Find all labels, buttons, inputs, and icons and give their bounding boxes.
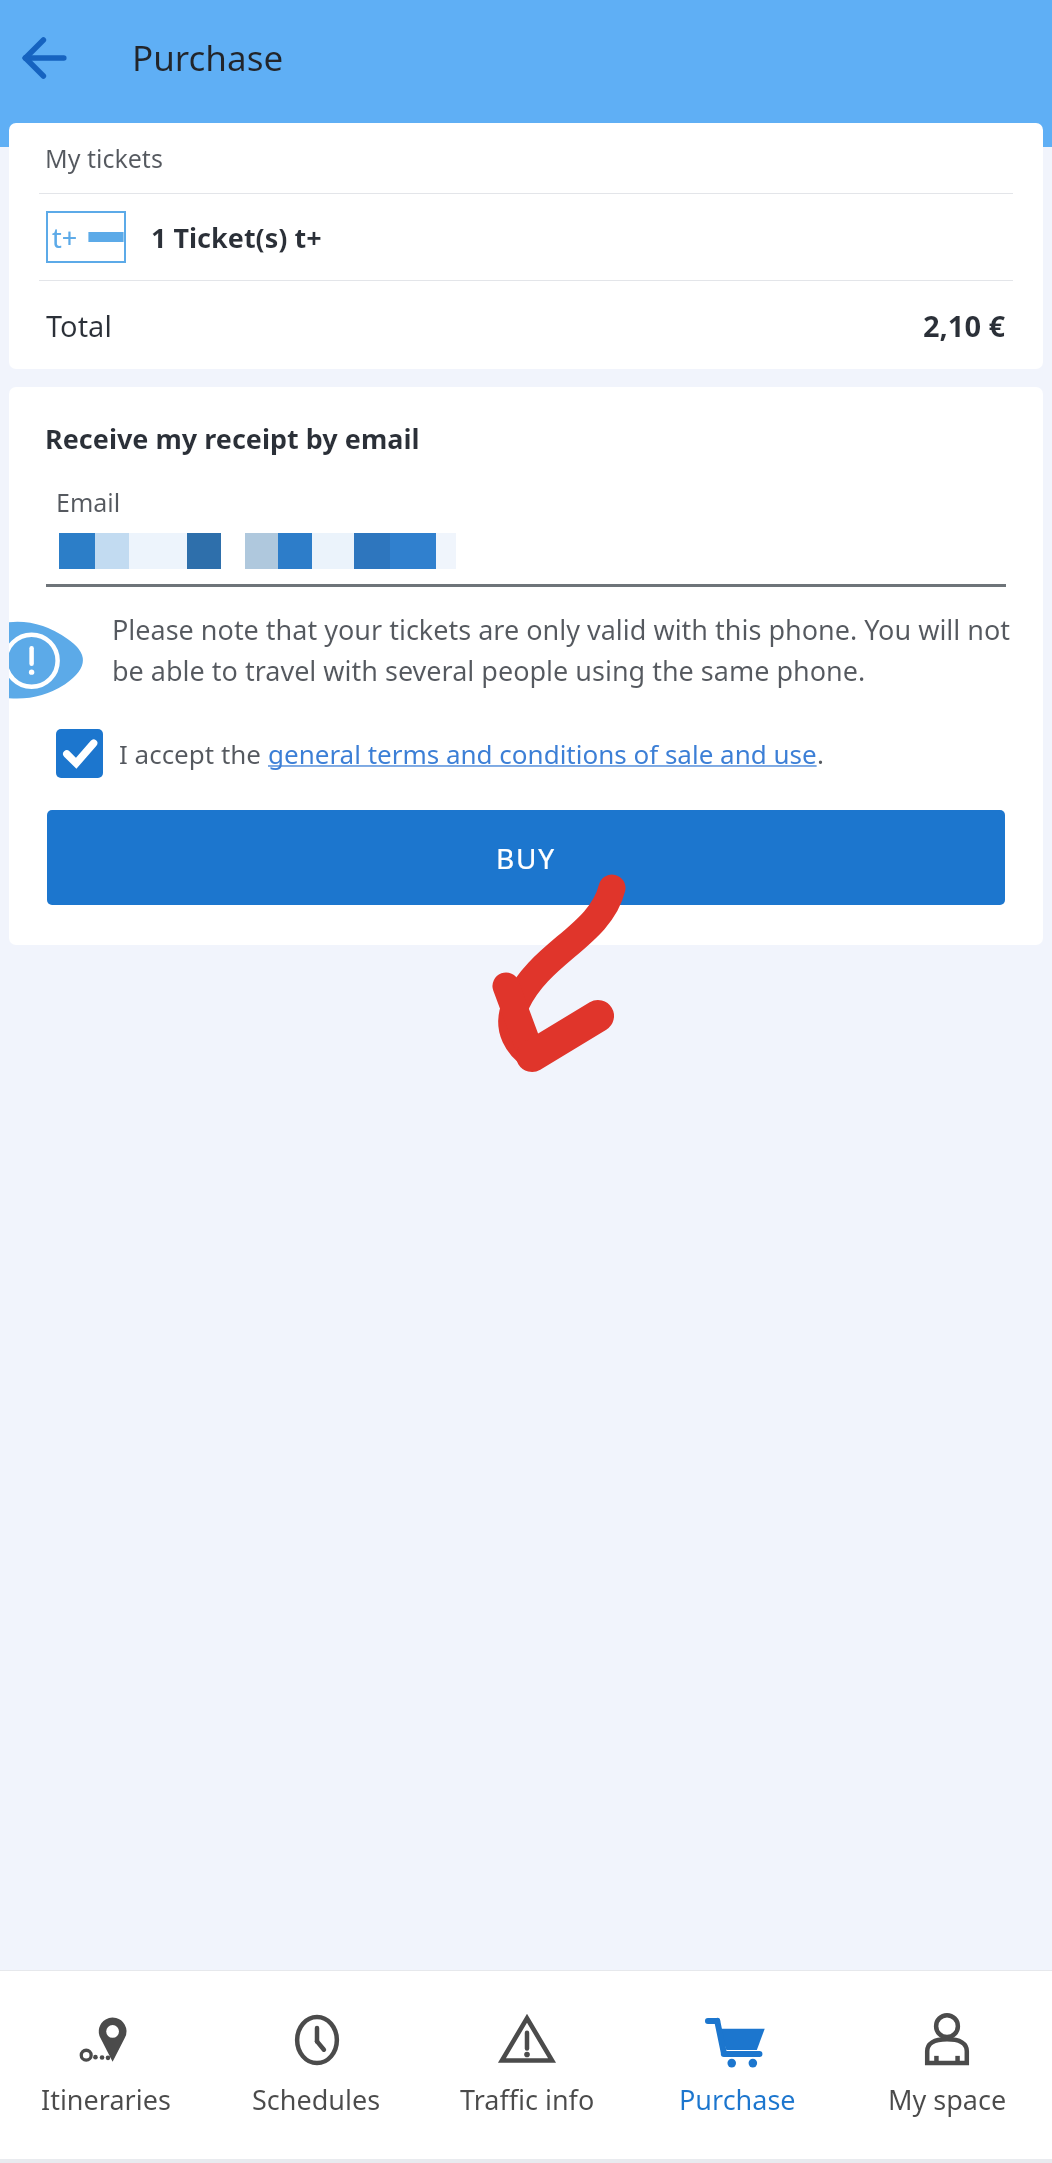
staticText: . <box>817 736 824 771</box>
button[interactable]: general terms and conditions of sale and… <box>268 736 817 771</box>
staticText: Purchase <box>679 2081 796 2118</box>
staticText: Traffic info <box>460 2081 595 2118</box>
staticText: Schedules <box>252 2081 381 2118</box>
staticText: Receive my receipt by email <box>45 420 420 457</box>
button[interactable] <box>59 532 1043 572</box>
staticText: I accept the <box>119 736 268 771</box>
staticText: Total <box>46 306 112 345</box>
staticText: 2,10 € <box>923 306 1006 345</box>
staticText: 1 Ticket(s) t+ <box>151 219 322 256</box>
button[interactable]: Back <box>13 27 75 89</box>
button[interactable]: t+ <box>9 194 1043 280</box>
button[interactable]: I accept the <box>9 729 1043 778</box>
button[interactable]: Traffic info <box>422 1971 632 2163</box>
staticText: My tickets <box>45 141 163 175</box>
button[interactable]: My space <box>842 1971 1052 2163</box>
staticText: Purchase <box>132 34 284 82</box>
staticText: BUY <box>496 839 556 877</box>
button[interactable]: Schedules <box>211 1971 422 2163</box>
button[interactable]: BUY <box>47 810 1005 905</box>
button[interactable]: Purchase <box>632 1971 842 2163</box>
staticText: Email <box>56 485 121 519</box>
staticText: Please note that your tickets are only v… <box>112 611 1021 689</box>
staticText: t+ <box>52 219 78 256</box>
staticText: Itineraries <box>41 2081 171 2118</box>
button[interactable]: Itineraries <box>0 1971 211 2163</box>
staticText: My space <box>888 2081 1007 2118</box>
